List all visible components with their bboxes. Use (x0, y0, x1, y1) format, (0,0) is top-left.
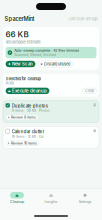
button[interactable]: Insights (34, 192, 68, 204)
button[interactable]: Execute cleanup (6, 88, 49, 94)
staticText: Clear (85, 88, 94, 93)
button[interactable]: Duplicate photos (3, 101, 99, 122)
staticText: Reclaimable estimate (6, 40, 41, 44)
staticText: Settings (78, 199, 91, 204)
button[interactable]: Settings (68, 192, 102, 204)
staticText: Execute cleanup (12, 88, 47, 93)
staticText: Duplicate photos (12, 103, 48, 108)
staticText: 14 KB (6, 81, 14, 85)
button[interactable]: Review 9 items (6, 115, 38, 120)
staticText: New Scan (12, 61, 33, 67)
button[interactable]: New Scan (6, 61, 35, 67)
button[interactable]: Calendar clutter (3, 126, 99, 148)
staticText: Cleanup (10, 199, 24, 204)
staticText: 66 KB (6, 30, 29, 39)
button[interactable]: Review 16 items (6, 141, 39, 146)
staticText: 16 items · 12 KB · Cal (12, 134, 44, 138)
staticText: Auto-sweep complete · 42 files trimmed (14, 48, 79, 53)
staticText: Selected for cleanup (6, 76, 41, 81)
staticText: Calendar clutter (12, 129, 45, 134)
staticText: Discard unused (44, 62, 70, 66)
staticText: 9 items · 38 KB · Photos (12, 109, 50, 113)
staticText: Insights (44, 199, 57, 204)
button[interactable]: Last scan 4m ago (68, 17, 97, 21)
staticText: Review 16 items (11, 141, 37, 145)
button[interactable]: Cleanup (0, 192, 34, 204)
staticText: Review 9 items (11, 115, 36, 119)
staticText: Last scan 4m ago (68, 17, 97, 21)
staticText: SpacerMint (4, 16, 34, 22)
button[interactable]: Clear (83, 88, 96, 94)
button[interactable]: Discard unused (38, 61, 72, 67)
staticText: Scanned, filtered, finished (14, 53, 56, 57)
